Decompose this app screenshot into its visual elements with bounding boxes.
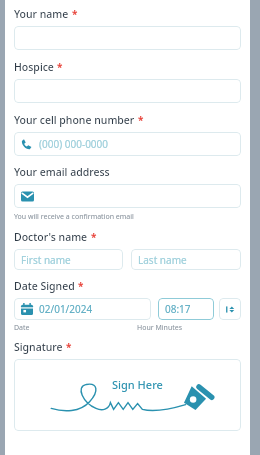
staticText: Hour Minutes (137, 323, 183, 333)
button[interactable] (14, 26, 241, 50)
staticText: 08:17 (165, 302, 191, 316)
staticText: * (91, 230, 97, 244)
staticText: Signature (14, 340, 63, 354)
staticText: Date Signed (14, 279, 75, 293)
button[interactable]: (000) 000-0000 (14, 132, 241, 156)
staticText: 02/01/2024 (39, 302, 93, 316)
button[interactable] (14, 184, 241, 208)
button[interactable] (14, 79, 241, 103)
staticText: (000) 000-0000 (39, 137, 109, 151)
button[interactable]: Sign Here (14, 359, 241, 431)
staticText: Sign Here (112, 377, 163, 392)
staticText: * (57, 60, 63, 74)
staticText: Your cell phone number (14, 113, 135, 127)
staticText: Last name (138, 253, 187, 267)
staticText: Your email address (14, 165, 110, 179)
button[interactable]: Adjust time (219, 298, 241, 320)
staticText: Doctor's name (14, 230, 88, 244)
button[interactable]: 02/01/2024 (14, 298, 151, 320)
staticText: You will receive a confirmation email (14, 212, 134, 222)
staticText: * (138, 113, 144, 127)
staticText: Date (14, 323, 30, 333)
button[interactable]: Last name (131, 249, 241, 270)
staticText: First name (21, 253, 71, 267)
button[interactable]: 08:17 (158, 298, 214, 320)
button[interactable]: First name (14, 249, 123, 270)
staticText: * (66, 340, 72, 354)
staticText: Your name (14, 7, 69, 21)
staticText: Hospice (14, 60, 54, 74)
staticText: * (78, 279, 84, 293)
staticText: * (72, 7, 78, 21)
